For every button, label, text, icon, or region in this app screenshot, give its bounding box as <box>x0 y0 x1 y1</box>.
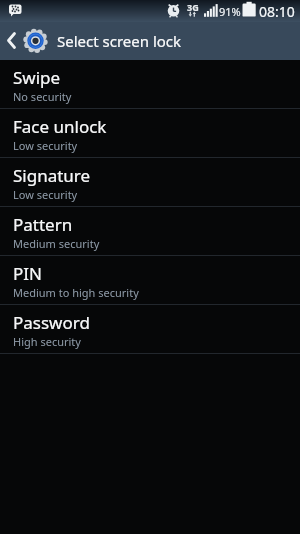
staticText: PIN <box>13 262 42 285</box>
staticText: Password <box>13 311 90 334</box>
button[interactable]: Swipe <box>0 60 300 108</box>
staticText: Signature <box>13 164 91 187</box>
staticText: Medium to high security <box>13 285 139 300</box>
staticText: Pattern <box>13 213 73 236</box>
button[interactable]: Signature <box>0 158 300 206</box>
staticText: Low security <box>13 187 78 202</box>
staticText: High security <box>13 334 81 349</box>
staticText: Low security <box>13 138 78 153</box>
staticText: 08:10 <box>259 2 295 21</box>
button[interactable]: Face unlock <box>0 109 300 157</box>
button[interactable]: PIN <box>0 256 300 304</box>
staticText: Swipe <box>13 66 61 89</box>
staticText: 3G <box>187 1 199 13</box>
button[interactable]: Password <box>0 305 300 353</box>
staticText: No security <box>13 89 72 104</box>
button[interactable]: Select screen lock <box>0 22 300 60</box>
staticText: Medium security <box>13 236 100 251</box>
button[interactable]: Pattern <box>0 207 300 255</box>
staticText: Select screen lock <box>57 31 182 51</box>
staticText: 91% <box>219 4 241 19</box>
staticText: Face unlock <box>13 115 107 138</box>
